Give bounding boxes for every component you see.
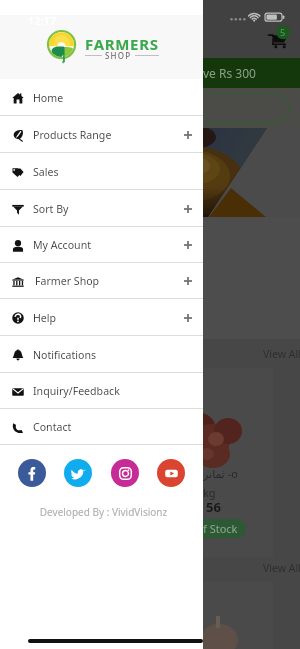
staticText: Sort By: [33, 202, 69, 216]
button[interactable]: Contact: [0, 409, 203, 445]
button[interactable]: Notifications: [0, 336, 203, 373]
button[interactable]: Help: [0, 299, 203, 336]
staticText: View All: [263, 347, 300, 361]
staticText: 56: [206, 498, 221, 516]
staticText: 5: [280, 26, 286, 38]
staticText: Farmer Shop: [35, 274, 100, 288]
staticText: Home: [33, 91, 64, 105]
staticText: ve Rs 300: [203, 65, 256, 81]
button[interactable]: My Account: [0, 227, 203, 263]
staticText: Inquiry/Feedback: [33, 384, 120, 398]
staticText: Sales: [33, 165, 59, 179]
button[interactable]: Home: [0, 79, 203, 116]
button[interactable]: Sort By: [0, 190, 203, 227]
staticText: Developed By : VividVisionz: [2, 505, 205, 519]
button[interactable]: Sales: [0, 153, 203, 190]
staticText: Products Range: [33, 128, 112, 142]
button[interactable]: Facebook: [18, 459, 46, 487]
staticText: Notifications: [33, 348, 97, 362]
staticText: FARMERS: [85, 34, 159, 54]
staticText: Contact: [33, 420, 72, 434]
staticText: Help: [33, 311, 57, 325]
staticText: SHOP: [105, 50, 132, 61]
button[interactable]: Products Range: [0, 116, 203, 153]
staticText: kg: [203, 485, 216, 500]
staticText: ثمانر -o: [203, 466, 238, 481]
staticText: View All: [263, 561, 300, 575]
staticText: My Account: [33, 238, 92, 252]
button[interactable]: Twitter: [64, 459, 92, 487]
button[interactable]: Instagram: [111, 459, 139, 487]
button[interactable]: Farmer Shop: [0, 263, 203, 299]
button[interactable]: YouTube: [157, 459, 185, 487]
staticText: f Stock: [203, 521, 238, 536]
button[interactable]: Inquiry/Feedback: [0, 373, 203, 409]
